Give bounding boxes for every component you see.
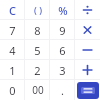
button[interactable]: C [0, 0, 25, 20]
staticText: 2 [34, 63, 41, 78]
button[interactable]: 00 [25, 80, 50, 100]
button[interactable]: Multiply [75, 20, 100, 40]
staticText: C [9, 3, 16, 18]
staticText: . [61, 83, 64, 98]
staticText: % [58, 3, 68, 18]
button[interactable]: Equals [77, 82, 99, 99]
staticText: 4 [9, 43, 16, 58]
staticText: 9 [59, 23, 66, 38]
button[interactable]: 2 [25, 60, 50, 80]
staticText: 5 [34, 43, 41, 58]
staticText: ( ) [34, 4, 42, 16]
staticText: 3 [59, 63, 66, 78]
staticText: 0 [9, 83, 16, 98]
button[interactable]: Plus [75, 60, 100, 80]
staticText: 6 [59, 43, 66, 58]
staticText: 1 [9, 63, 16, 78]
staticText: 00 [32, 83, 44, 97]
button[interactable]: . [50, 80, 75, 100]
button[interactable]: 4 [0, 40, 25, 60]
button[interactable]: ( ) [25, 0, 50, 20]
button[interactable]: 1 [0, 60, 25, 80]
button[interactable]: 3 [50, 60, 75, 80]
button[interactable]: % [50, 0, 75, 20]
button[interactable]: 7 [0, 20, 25, 40]
staticText: 8 [34, 23, 41, 38]
button[interactable]: 0 [0, 80, 25, 100]
button[interactable]: 6 [50, 40, 75, 60]
button[interactable]: Divide [75, 0, 100, 20]
button[interactable]: 5 [25, 40, 50, 60]
button[interactable]: Minus [75, 40, 100, 60]
button[interactable]: 8 [25, 20, 50, 40]
button[interactable]: 9 [50, 20, 75, 40]
staticText: 7 [9, 23, 16, 38]
